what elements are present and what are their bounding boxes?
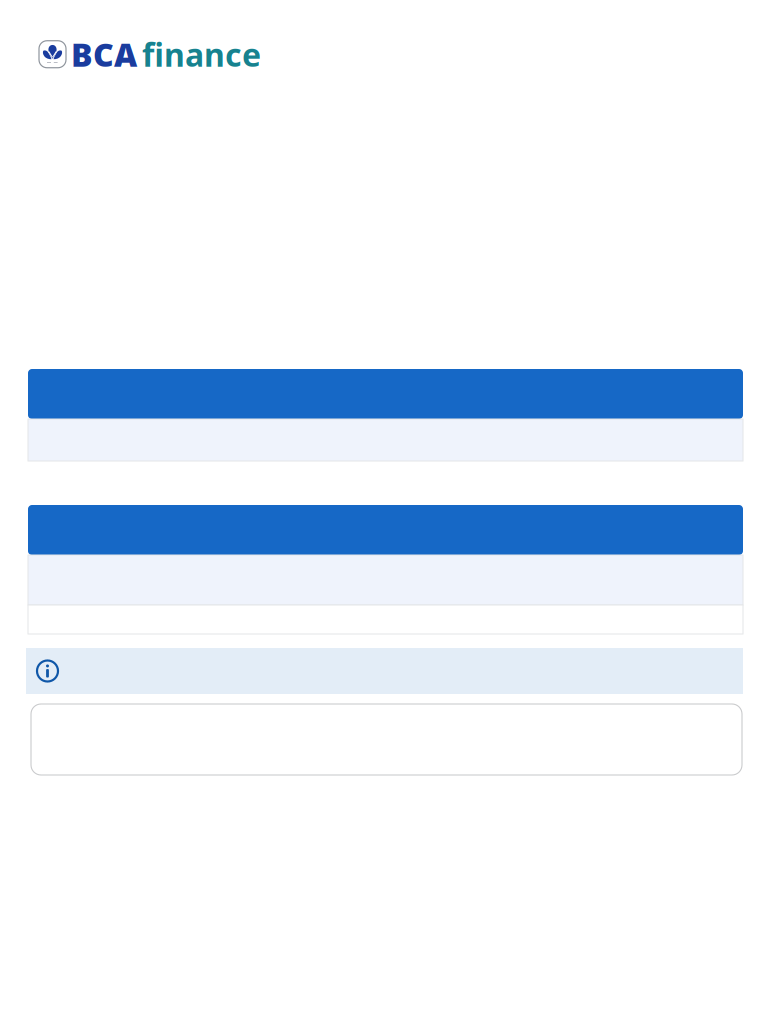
button[interactable]: Section header [28, 505, 743, 555]
staticText: BCA [71, 33, 137, 75]
staticText: finance [142, 33, 261, 75]
button[interactable]: Information [36, 659, 59, 682]
button[interactable]: Section header [28, 369, 743, 419]
button[interactable]: Input field [31, 704, 742, 775]
button[interactable]: Field [28, 605, 743, 634]
